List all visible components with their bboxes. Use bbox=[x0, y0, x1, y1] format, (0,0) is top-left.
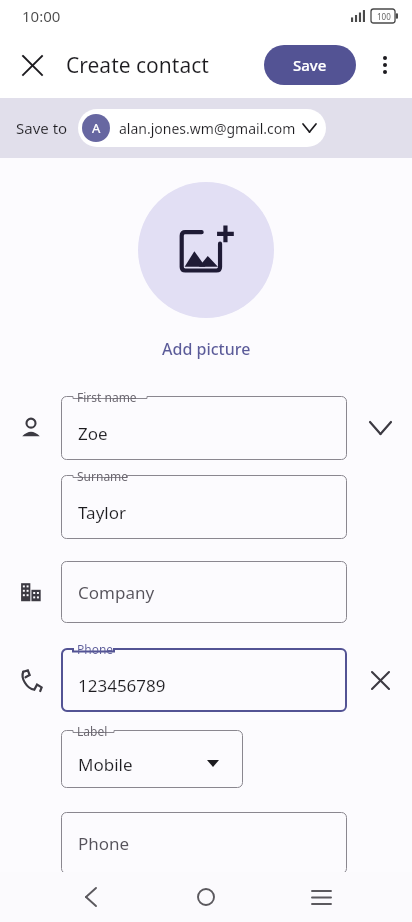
other: Company bbox=[11, 572, 51, 612]
button[interactable]: Home bbox=[182, 873, 230, 921]
staticText: 123456789 bbox=[78, 674, 166, 697]
button[interactable]: Back bbox=[67, 873, 115, 921]
staticText: Label bbox=[77, 723, 108, 739]
button[interactable]: Surname bbox=[61, 475, 347, 539]
staticText: 10:00 bbox=[22, 6, 61, 26]
button[interactable]: Save bbox=[264, 45, 356, 85]
other: Phone bbox=[11, 660, 51, 700]
staticText: A bbox=[92, 119, 101, 137]
button[interactable]: First name bbox=[61, 396, 347, 460]
staticText: Mobile bbox=[78, 753, 133, 776]
button[interactable]: Label bbox=[61, 730, 243, 788]
staticText: Phone bbox=[78, 832, 130, 855]
staticText: Surname bbox=[77, 468, 129, 484]
button[interactable]: Close bbox=[10, 43, 54, 87]
staticText: Add picture bbox=[162, 338, 251, 360]
staticText: Zoe bbox=[78, 422, 108, 445]
staticText: alan.jones.wm@gmail.com bbox=[119, 119, 296, 138]
staticText: Taylor bbox=[78, 501, 126, 524]
staticText: 100 bbox=[377, 11, 391, 22]
button[interactable]: Add picture bbox=[156, 336, 257, 362]
staticText: Save to bbox=[16, 118, 68, 138]
staticText: Save bbox=[293, 55, 327, 75]
button[interactable]: A bbox=[78, 109, 326, 147]
staticText: Create contact bbox=[66, 51, 209, 80]
button[interactable]: Recent apps bbox=[297, 873, 345, 921]
other: Name bbox=[11, 408, 51, 448]
button[interactable]: More options bbox=[362, 42, 408, 88]
button[interactable]: Phone bbox=[61, 812, 347, 874]
staticText: Company bbox=[78, 581, 155, 604]
staticText: Phone bbox=[77, 641, 114, 657]
button[interactable]: Expand name fields bbox=[358, 406, 402, 450]
button[interactable]: Add picture bbox=[138, 182, 274, 318]
staticText: First name bbox=[77, 389, 137, 405]
button[interactable]: Clear phone number bbox=[358, 658, 402, 702]
button[interactable]: Company bbox=[61, 561, 347, 623]
button[interactable]: Phone bbox=[61, 648, 347, 712]
